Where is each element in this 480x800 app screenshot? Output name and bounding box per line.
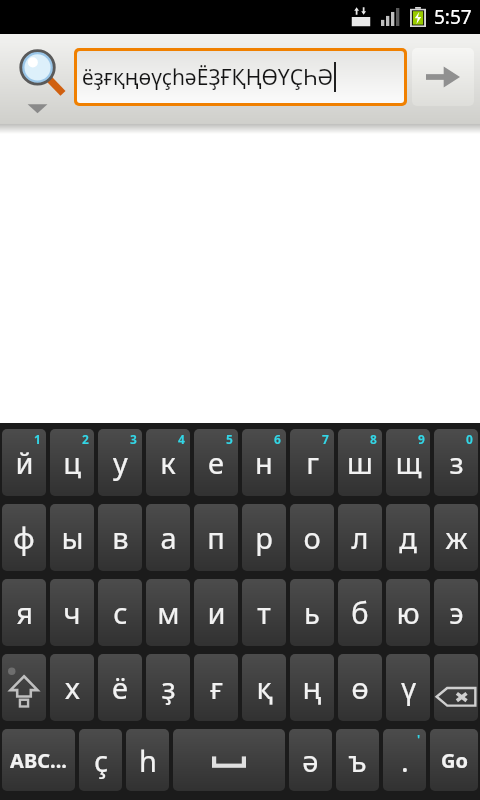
staticText: э <box>449 593 464 632</box>
staticText: ъ <box>348 741 367 780</box>
staticText: м <box>157 593 180 632</box>
staticText: 9 <box>418 431 425 447</box>
button[interactable]: . <box>383 729 426 791</box>
staticText: р <box>255 518 273 557</box>
button[interactable]: ч <box>50 579 94 646</box>
button[interactable]: й <box>2 429 46 496</box>
button[interactable]: ç <box>79 729 122 791</box>
button[interactable]: о <box>290 504 334 571</box>
staticText: з <box>449 443 464 482</box>
button[interactable]: к <box>146 429 190 496</box>
staticText: ь <box>304 593 320 632</box>
staticText: 3 <box>130 431 137 447</box>
button[interactable]: қ <box>242 654 286 721</box>
staticText: л <box>351 518 369 557</box>
staticText: ç <box>94 741 108 780</box>
staticText: 2 <box>82 431 89 447</box>
button[interactable]: г <box>290 429 334 496</box>
staticText: ы <box>61 518 84 557</box>
button[interactable]: ө <box>338 654 382 721</box>
button[interactable]: ш <box>338 429 382 496</box>
button[interactable]: ё <box>98 654 142 721</box>
staticText: ф <box>13 518 35 557</box>
button[interactable]: ABC... <box>2 729 75 791</box>
staticText: 5:57 <box>434 4 472 30</box>
button[interactable]: ю <box>386 579 430 646</box>
staticText: д <box>399 518 417 557</box>
button[interactable]: м <box>146 579 190 646</box>
button[interactable]: р <box>242 504 286 571</box>
button[interactable]: ф <box>2 504 46 571</box>
staticText: н <box>255 443 273 482</box>
staticText: ABC... <box>10 747 67 774</box>
staticText: щ <box>395 443 422 482</box>
button[interactable]: с <box>98 579 142 646</box>
button[interactable]: ёҙғқңөүçһәЁҘҒҚҢӨҮÇҺӘ <box>77 51 404 103</box>
staticText: е <box>208 443 224 482</box>
button[interactable]: ц <box>50 429 94 496</box>
staticText: 6 <box>274 431 281 447</box>
button[interactable]: у <box>98 429 142 496</box>
button[interactable]: х <box>50 654 94 721</box>
staticText: б <box>351 593 369 632</box>
staticText: х <box>65 668 80 707</box>
staticText: ү <box>401 668 416 707</box>
staticText: ғ <box>210 668 223 707</box>
staticText: ҙ <box>161 668 176 707</box>
staticText: ' <box>417 731 421 747</box>
button[interactable]: ь <box>290 579 334 646</box>
button[interactable]: щ <box>386 429 430 496</box>
staticText: и <box>207 593 226 632</box>
button[interactable]: һ <box>126 729 169 791</box>
button[interactable]: б <box>338 579 382 646</box>
button[interactable]: н <box>242 429 286 496</box>
button[interactable]: ү <box>386 654 430 721</box>
button[interactable]: Go <box>430 729 478 791</box>
button[interactable]: я <box>2 579 46 646</box>
button[interactable]: ҙ <box>146 654 190 721</box>
button[interactable]: Delete <box>434 654 478 721</box>
staticText: ю <box>396 593 420 632</box>
button[interactable]: д <box>386 504 430 571</box>
button[interactable]: ң <box>290 654 334 721</box>
button[interactable]: Search <box>412 48 474 106</box>
staticText: ч <box>63 593 81 632</box>
staticText: а <box>160 518 177 557</box>
staticText: с <box>113 593 128 632</box>
staticText: п <box>207 518 225 557</box>
button[interactable]: е <box>194 429 238 496</box>
button[interactable]: и <box>194 579 238 646</box>
staticText: ц <box>63 443 81 482</box>
button[interactable]: Space <box>173 729 285 791</box>
staticText: һ <box>139 741 157 780</box>
staticText: г <box>306 443 319 482</box>
button[interactable]: а <box>146 504 190 571</box>
button[interactable]: э <box>434 579 478 646</box>
staticText: 4 <box>178 431 185 447</box>
staticText: . <box>401 741 409 780</box>
staticText: ш <box>347 443 373 482</box>
button[interactable]: ғ <box>194 654 238 721</box>
button[interactable]: Search engine <box>6 34 74 120</box>
button[interactable]: Shift <box>2 654 46 721</box>
staticText: ёҙғқңөүçһәЁҘҒҚҢӨҮÇҺӘ <box>82 63 334 92</box>
staticText: й <box>15 443 34 482</box>
button[interactable]: ъ <box>336 729 379 791</box>
staticText: Go <box>441 747 468 774</box>
button[interactable]: т <box>242 579 286 646</box>
staticText: я <box>16 593 33 632</box>
button[interactable]: ә <box>289 729 332 791</box>
staticText: ж <box>445 518 468 557</box>
button[interactable]: ж <box>434 504 478 571</box>
button[interactable]: ы <box>50 504 94 571</box>
staticText: 5 <box>226 431 233 447</box>
button[interactable]: в <box>98 504 142 571</box>
staticText: к <box>160 443 176 482</box>
button[interactable]: з <box>434 429 478 496</box>
staticText: ё <box>112 668 128 707</box>
button[interactable]: л <box>338 504 382 571</box>
staticText: 0 <box>466 431 473 447</box>
button[interactable]: п <box>194 504 238 571</box>
staticText: ө <box>351 668 369 707</box>
staticText: ә <box>302 741 319 780</box>
